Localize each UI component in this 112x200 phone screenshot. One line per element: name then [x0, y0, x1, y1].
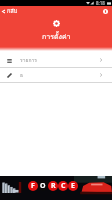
- button[interactable]: ธ: [0, 68, 112, 82]
- staticText: R: [51, 181, 56, 191]
- staticText: 8:18: [96, 0, 105, 6]
- staticText: รายการ: [20, 56, 37, 64]
- button[interactable]: Advertisement: [0, 176, 112, 200]
- button[interactable]: รายการ: [0, 53, 112, 67]
- button[interactable]: กลับ: [0, 5, 23, 18]
- staticText: การตั้งค่า: [42, 31, 71, 42]
- staticText: E: [71, 181, 75, 191]
- staticText: O: [40, 181, 46, 191]
- staticText: ธ: [20, 71, 24, 79]
- staticText: F: [31, 181, 35, 191]
- button[interactable]: Info: [99, 5, 111, 17]
- staticText: กลับ: [7, 7, 18, 16]
- staticText: C: [61, 181, 66, 191]
